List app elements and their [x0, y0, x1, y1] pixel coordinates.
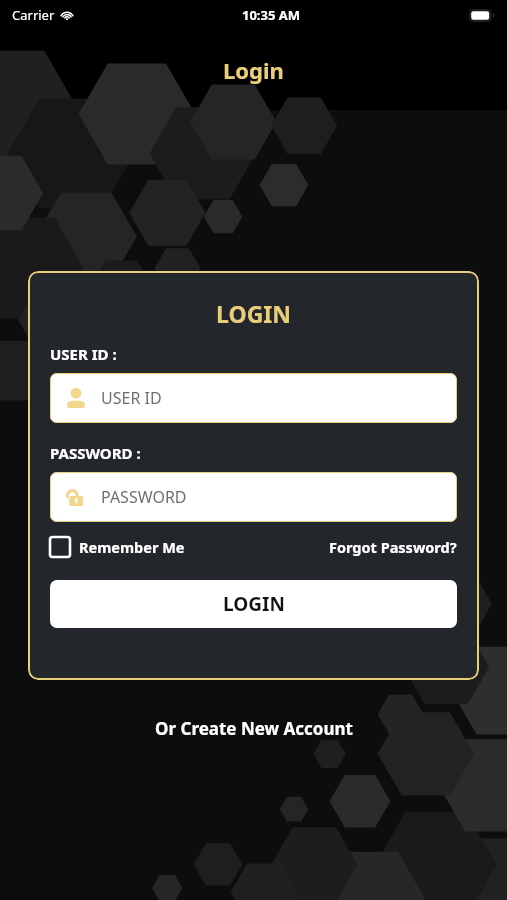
staticText: Login: [223, 55, 284, 85]
staticText: LOGIN: [223, 591, 285, 617]
staticText: Remember Me: [79, 537, 185, 557]
button[interactable]: USER ID: [50, 373, 457, 423]
staticText: Or Create New Account: [155, 717, 353, 740]
button[interactable]: Forgot Password?: [329, 537, 457, 557]
staticText: USER ID: [101, 387, 162, 409]
staticText: PASSWORD: [101, 486, 187, 508]
staticText: 10:35 AM: [242, 6, 301, 24]
button[interactable]: LOGIN: [50, 580, 457, 628]
button[interactable]: Remember Me: [50, 537, 185, 557]
staticText: Carrier: [12, 6, 55, 24]
staticText: LOGIN: [50, 298, 457, 329]
button[interactable]: PASSWORD: [50, 472, 457, 522]
button[interactable]: Back: [6, 44, 58, 96]
button[interactable]: Or Create New Account: [0, 717, 507, 740]
staticText: Forgot Password?: [329, 537, 457, 557]
staticText: USER ID :: [50, 344, 117, 364]
staticText: PASSWORD :: [50, 443, 141, 463]
